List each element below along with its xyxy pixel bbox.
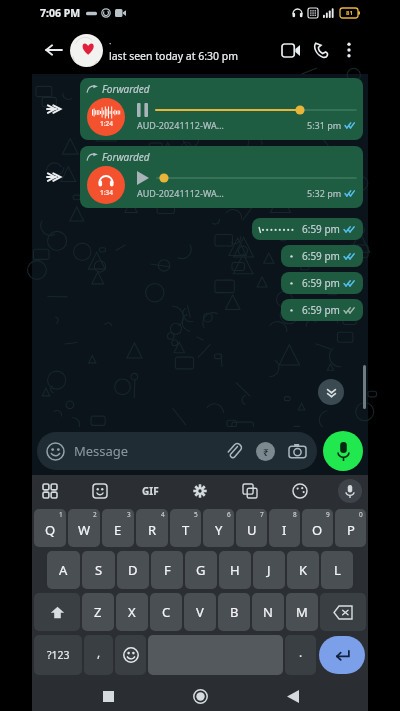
staticText: J <box>267 561 271 579</box>
button[interactable]: Voice call <box>306 35 336 65</box>
staticText: 8 <box>293 510 297 519</box>
button[interactable]: Profile photo <box>70 34 103 67</box>
button[interactable]: 6:59 pm <box>281 272 363 294</box>
button[interactable]: Apps <box>38 479 62 503</box>
staticText: 6:59 pm <box>302 222 340 236</box>
button[interactable]: 8 <box>269 509 300 547</box>
button[interactable]: Enter <box>319 636 365 674</box>
staticText: 5:31 pm <box>307 119 342 131</box>
staticText: last seen today at 6:30 pm <box>109 49 239 63</box>
button[interactable]: C <box>150 593 182 631</box>
button[interactable]: GIF <box>138 479 162 503</box>
button[interactable]: H <box>219 551 251 589</box>
button[interactable]: 4 <box>136 509 168 547</box>
staticText: B <box>230 603 239 621</box>
button[interactable]: Camera <box>286 440 308 462</box>
staticText: 9 <box>326 510 330 519</box>
staticText: AUD-20241112-WA… <box>137 119 224 131</box>
button[interactable]: A <box>47 551 80 589</box>
button[interactable]: F <box>151 551 183 589</box>
staticText: ?123 <box>47 648 70 662</box>
button[interactable]: Voice input <box>338 479 362 503</box>
button[interactable]: Forwarded <box>80 78 363 140</box>
button[interactable]: 9 <box>302 509 333 547</box>
staticText: 5 <box>194 510 198 519</box>
button[interactable]: V <box>184 593 216 631</box>
staticText: 2 <box>93 510 97 519</box>
button[interactable]: ?123 <box>34 635 82 675</box>
button[interactable]: Attach <box>223 440 245 462</box>
button[interactable]: S <box>82 551 115 589</box>
staticText: O <box>312 521 323 539</box>
staticText: 5:32 pm <box>307 187 342 199</box>
button[interactable]: Translate <box>238 479 262 503</box>
button[interactable]: Voice message <box>323 431 363 471</box>
button[interactable]: 1 <box>34 509 66 547</box>
staticText: S <box>95 561 103 579</box>
staticText: 81 <box>346 9 353 17</box>
button[interactable]: K <box>287 551 319 589</box>
staticText: C <box>162 603 171 621</box>
button[interactable]: M <box>286 593 318 631</box>
staticText: 7:06 PM <box>40 6 81 20</box>
staticText: F <box>164 561 171 579</box>
button[interactable]: 0 <box>335 509 366 547</box>
button[interactable]: 6:59 pm <box>281 245 363 267</box>
staticText: 1 <box>59 510 63 519</box>
staticText: GIF <box>142 484 159 498</box>
staticText: E <box>114 521 122 539</box>
staticText: 6:59 pm <box>302 249 340 263</box>
button[interactable]: Scroll to bottom <box>318 379 344 405</box>
staticText: W <box>78 521 91 539</box>
staticText: · <box>109 37 112 49</box>
button[interactable]: Recents <box>91 681 125 711</box>
button[interactable]: Back <box>276 681 310 711</box>
button[interactable]: L <box>321 551 353 589</box>
button[interactable]: 7 <box>236 509 267 547</box>
button[interactable]: X <box>116 593 148 631</box>
button[interactable]: More options <box>336 37 362 63</box>
button[interactable]: D <box>117 551 149 589</box>
button[interactable]: Video call <box>276 35 306 65</box>
staticText: U <box>247 521 257 539</box>
button[interactable]: Z <box>82 593 114 631</box>
button[interactable]: B <box>218 593 250 631</box>
button[interactable]: 6:59 pm <box>281 299 363 321</box>
button[interactable]: Back <box>38 35 68 65</box>
staticText: I <box>282 521 287 539</box>
button[interactable]: Comma <box>84 635 113 675</box>
staticText: H <box>230 561 240 579</box>
staticText: V <box>196 603 204 621</box>
button[interactable]: Message <box>37 432 317 470</box>
button[interactable]: Stickers <box>88 479 112 503</box>
button[interactable]: Forwarded <box>80 146 363 208</box>
button[interactable]: Payments <box>256 442 275 461</box>
button[interactable]: Emoji <box>115 635 146 675</box>
staticText: L <box>334 561 341 579</box>
staticText: 1:34 <box>100 188 113 197</box>
staticText: AUD-20241112-WA… <box>137 187 224 199</box>
staticText: 6 <box>227 510 231 519</box>
button[interactable]: 6 <box>203 509 234 547</box>
button[interactable]: Shift <box>34 593 80 631</box>
button[interactable]: Settings <box>188 479 212 503</box>
button[interactable]: Period <box>285 635 316 675</box>
button[interactable]: 5 <box>170 509 201 547</box>
staticText: R <box>148 521 157 539</box>
staticText: Q <box>45 521 56 539</box>
button[interactable]: Home <box>183 681 217 711</box>
staticText: P <box>347 521 355 539</box>
staticText: . <box>299 644 303 660</box>
button[interactable]: G <box>185 551 217 589</box>
button[interactable]: Theme <box>288 479 312 503</box>
staticText: Forwarded <box>102 150 150 164</box>
button[interactable]: N <box>252 593 284 631</box>
button[interactable]: J <box>253 551 285 589</box>
button[interactable]: 2 <box>68 509 100 547</box>
button[interactable]: 6:59 pm <box>252 218 363 240</box>
button[interactable]: Backspace <box>320 593 366 631</box>
staticText: G <box>196 561 206 579</box>
staticText: 1:24 <box>100 119 113 128</box>
button[interactable]: 3 <box>102 509 134 547</box>
